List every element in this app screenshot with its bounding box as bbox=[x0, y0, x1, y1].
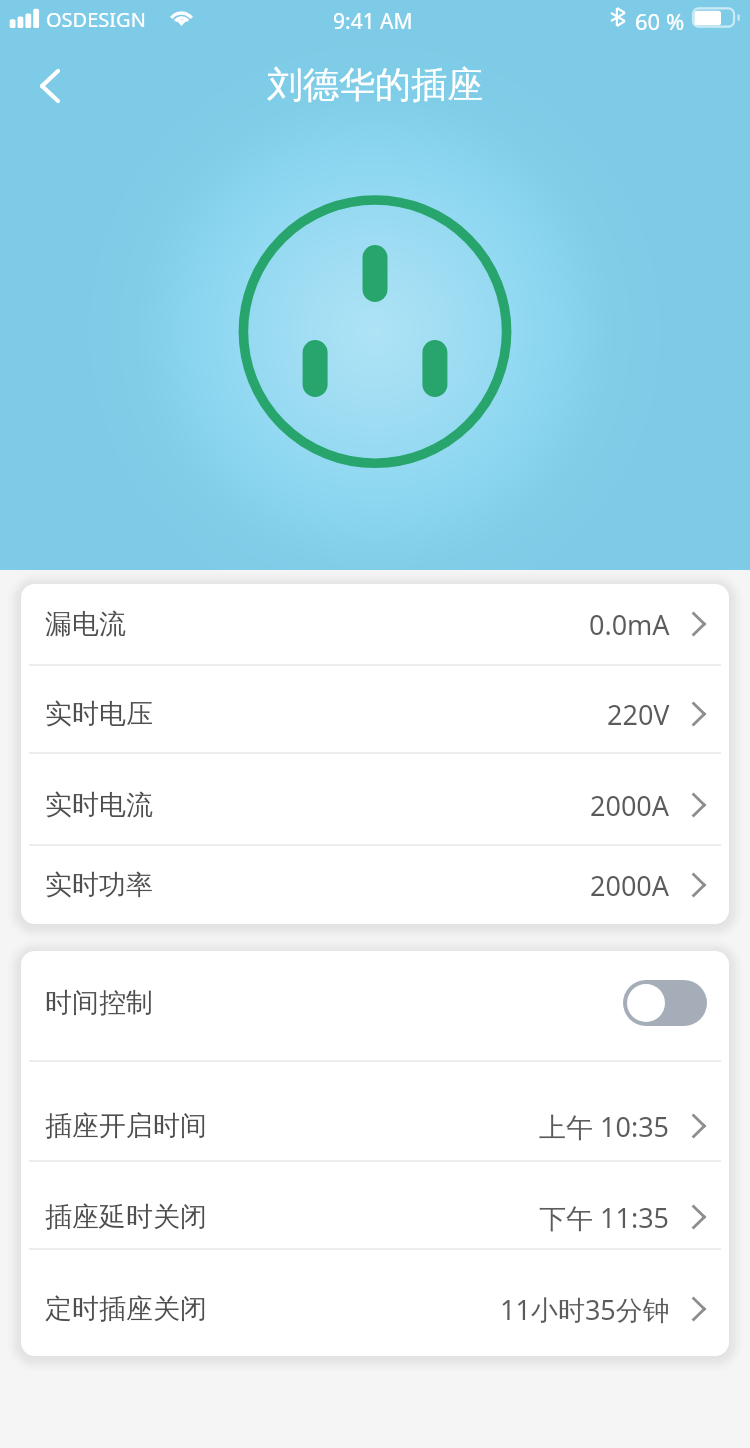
button[interactable]: 定时插座关闭 bbox=[21, 1250, 729, 1356]
staticText: 插座开启时间 bbox=[45, 1109, 207, 1143]
button[interactable]: Time control toggle bbox=[623, 980, 707, 1026]
staticText: 刘德华的插座 bbox=[267, 62, 483, 107]
button[interactable]: 实时电流 bbox=[21, 754, 729, 846]
staticText: 实时电压 bbox=[45, 697, 153, 731]
button[interactable]: 时间控制 bbox=[21, 951, 729, 1062]
staticText: 上午 10:35 bbox=[539, 1108, 670, 1145]
staticText: 插座延时关闭 bbox=[45, 1200, 207, 1234]
staticText: 220V bbox=[607, 696, 670, 733]
staticText: 2000A bbox=[590, 787, 670, 824]
staticText: 9:41 AM bbox=[333, 7, 413, 36]
staticText: 60 % bbox=[635, 6, 685, 36]
button[interactable]: 漏电流 bbox=[21, 584, 729, 666]
staticText: 2000A bbox=[590, 867, 670, 904]
button[interactable]: 实时功率 bbox=[21, 846, 729, 924]
button[interactable]: 实时电压 bbox=[21, 666, 729, 754]
button[interactable]: 插座开启时间 bbox=[21, 1062, 729, 1162]
button[interactable]: Back bbox=[16, 52, 84, 120]
staticText: OSDESIGN bbox=[46, 6, 146, 33]
staticText: 实时功率 bbox=[45, 868, 153, 902]
staticText: 定时插座关闭 bbox=[45, 1292, 207, 1326]
staticText: 下午 11:35 bbox=[539, 1199, 670, 1236]
staticText: 0.0mA bbox=[589, 606, 670, 643]
staticText: 时间控制 bbox=[45, 986, 153, 1020]
staticText: 漏电流 bbox=[45, 607, 126, 641]
staticText: 11小时35分钟 bbox=[500, 1291, 670, 1328]
staticText: 实时电流 bbox=[45, 788, 153, 822]
button[interactable]: 插座延时关闭 bbox=[21, 1162, 729, 1250]
